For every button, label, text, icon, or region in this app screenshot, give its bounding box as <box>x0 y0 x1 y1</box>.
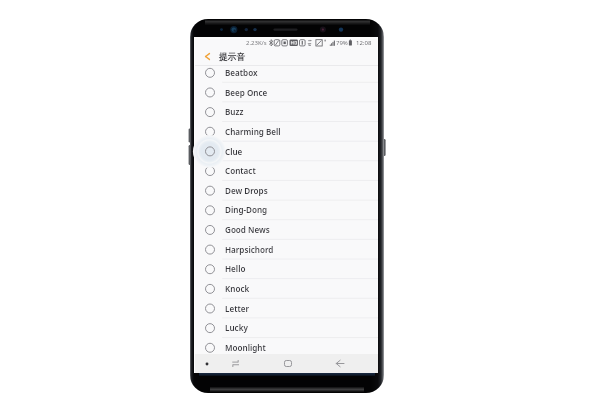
button[interactable]: Back <box>200 48 215 64</box>
staticText: Hello <box>225 263 246 274</box>
staticText: Letter <box>225 303 249 314</box>
button[interactable]: Back <box>329 354 351 373</box>
staticText: Clue <box>225 146 243 157</box>
staticText: 2.23K/s <box>246 39 267 47</box>
button[interactable]: Charming Bell <box>195 122 378 142</box>
staticText: Beep Once <box>225 87 268 98</box>
staticText: Charming Bell <box>225 126 281 137</box>
button[interactable]: Beep Once <box>195 83 378 103</box>
button[interactable]: Dew Drops <box>195 181 378 201</box>
staticText: Good News <box>225 224 270 235</box>
staticText: Dew Drops <box>225 185 268 196</box>
button[interactable]: Assistant <box>198 354 216 373</box>
staticText: Beatbox <box>225 67 258 78</box>
staticText: Ding-Dong <box>225 204 268 215</box>
staticText: 79% <box>336 39 348 47</box>
button[interactable]: Lucky <box>195 318 378 338</box>
staticText: Contact <box>225 165 256 176</box>
button[interactable]: Contact <box>195 161 378 181</box>
staticText: Buzz <box>225 106 244 117</box>
staticText: 12:08 <box>356 39 372 47</box>
button[interactable]: Clue <box>195 142 378 162</box>
button[interactable]: Home <box>277 354 299 373</box>
staticText: Lucky <box>225 322 248 333</box>
staticText: Moonlight <box>225 342 266 353</box>
button[interactable]: Hello <box>195 259 378 279</box>
staticText: Knock <box>225 283 250 294</box>
staticText: Harpsichord <box>225 244 274 255</box>
button[interactable]: Buzz <box>195 102 378 122</box>
button[interactable]: Recents <box>224 354 246 373</box>
button[interactable]: Beatbox <box>195 63 378 83</box>
button[interactable]: Ding-Dong <box>195 200 378 220</box>
button[interactable]: Moonlight <box>195 338 378 358</box>
staticText: 提示音 <box>219 52 245 63</box>
button[interactable]: Harpsichord <box>195 240 378 260</box>
button[interactable]: Good News <box>195 220 378 240</box>
button[interactable]: Knock <box>195 279 378 299</box>
button[interactable]: Letter <box>195 299 378 319</box>
